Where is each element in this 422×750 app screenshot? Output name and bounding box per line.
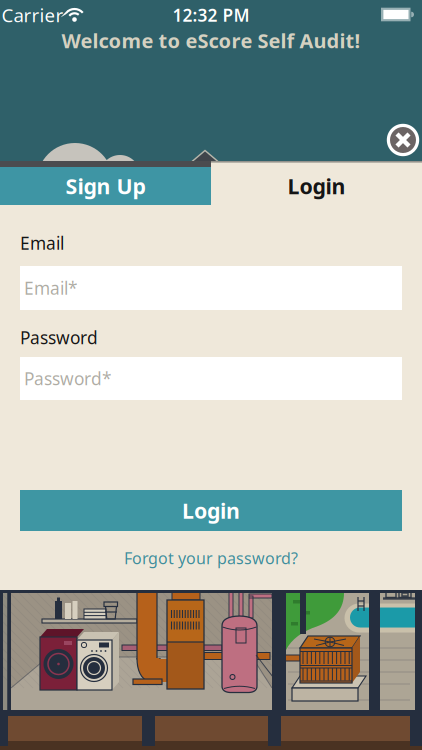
button[interactable]: Login xyxy=(20,490,402,531)
staticText: Carrier xyxy=(1,3,63,27)
staticText: Login xyxy=(287,172,345,200)
button[interactable]: Password* xyxy=(20,357,402,400)
staticText: Email xyxy=(20,231,64,254)
button[interactable]: Sign Up xyxy=(0,167,211,205)
staticText: Sign Up xyxy=(65,172,145,200)
button[interactable]: Close xyxy=(386,123,420,157)
staticText: 12:32 PM xyxy=(172,3,249,26)
staticText: Password xyxy=(20,326,98,349)
staticText: Forgot your password? xyxy=(124,547,298,569)
staticText: Password* xyxy=(24,367,112,390)
staticText: Email* xyxy=(24,276,78,299)
button[interactable]: Login xyxy=(211,167,422,205)
button[interactable]: Forgot your password? xyxy=(124,547,298,569)
staticText: Welcome to eScore Self Audit! xyxy=(61,27,360,54)
button[interactable]: Email* xyxy=(20,266,402,310)
staticText: Login xyxy=(182,496,240,525)
